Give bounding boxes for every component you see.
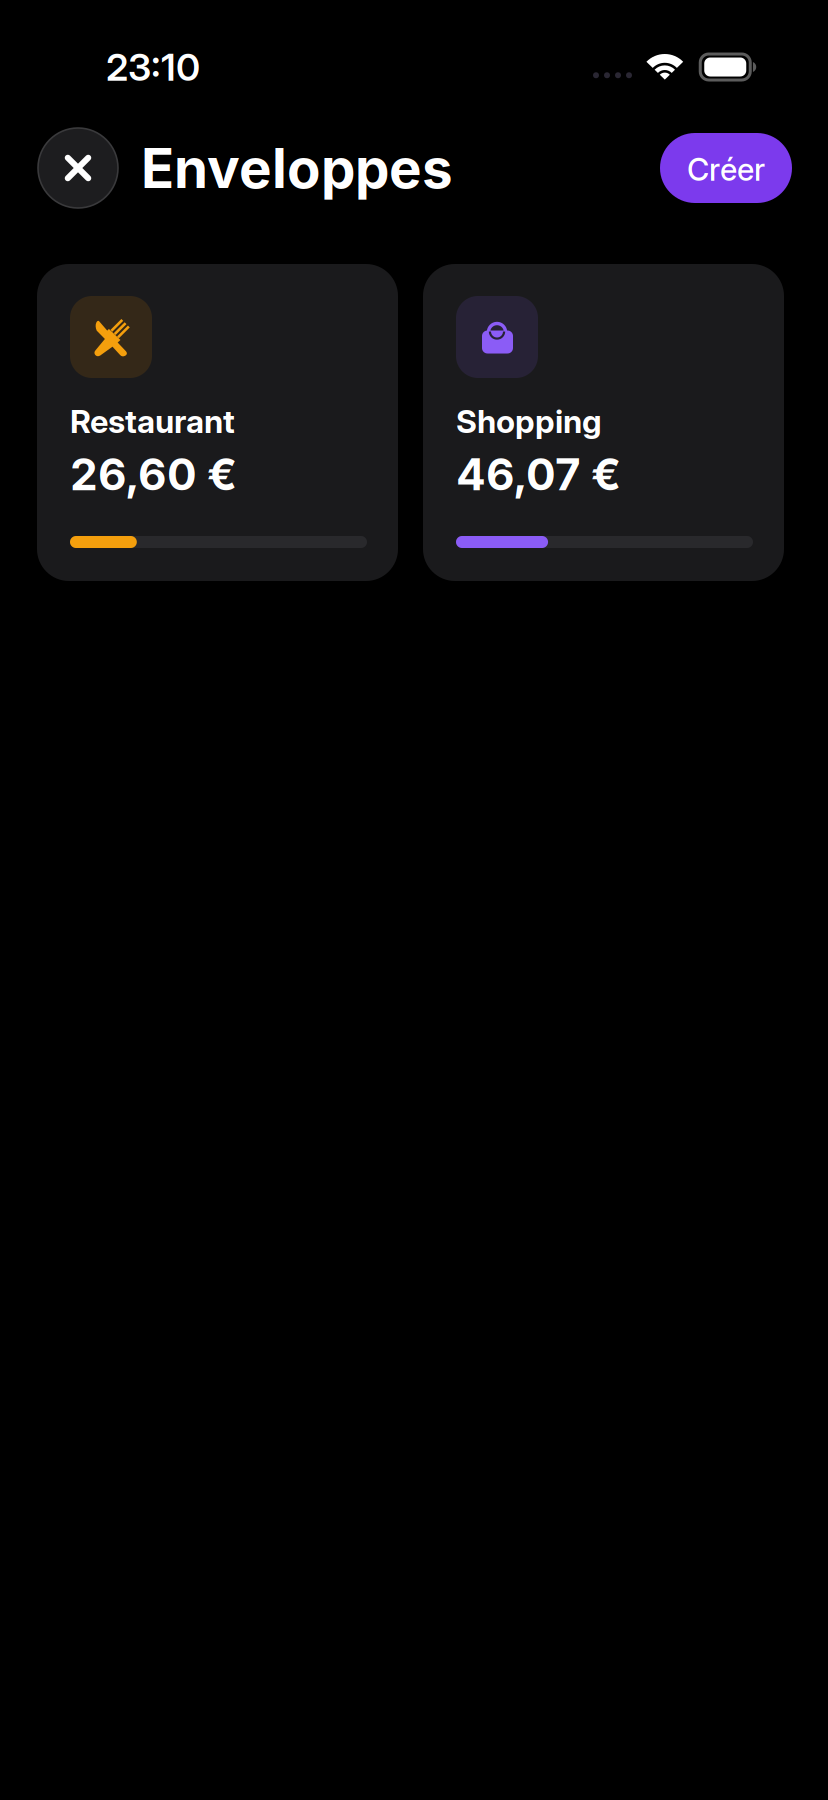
staticText: Restaurant [70, 402, 235, 441]
button[interactable]: Fermer [38, 128, 118, 208]
button[interactable]: Shopping [423, 264, 784, 581]
staticText: 23:10 [106, 44, 200, 90]
staticText: 26,60 € [70, 448, 237, 501]
button[interactable]: Créer [660, 133, 792, 203]
staticText: 46,07 € [456, 448, 621, 501]
staticText: Shopping [456, 402, 602, 441]
button[interactable]: Restaurant [37, 264, 398, 581]
staticText: Enveloppes [141, 135, 453, 201]
staticText: Créer [687, 151, 765, 188]
